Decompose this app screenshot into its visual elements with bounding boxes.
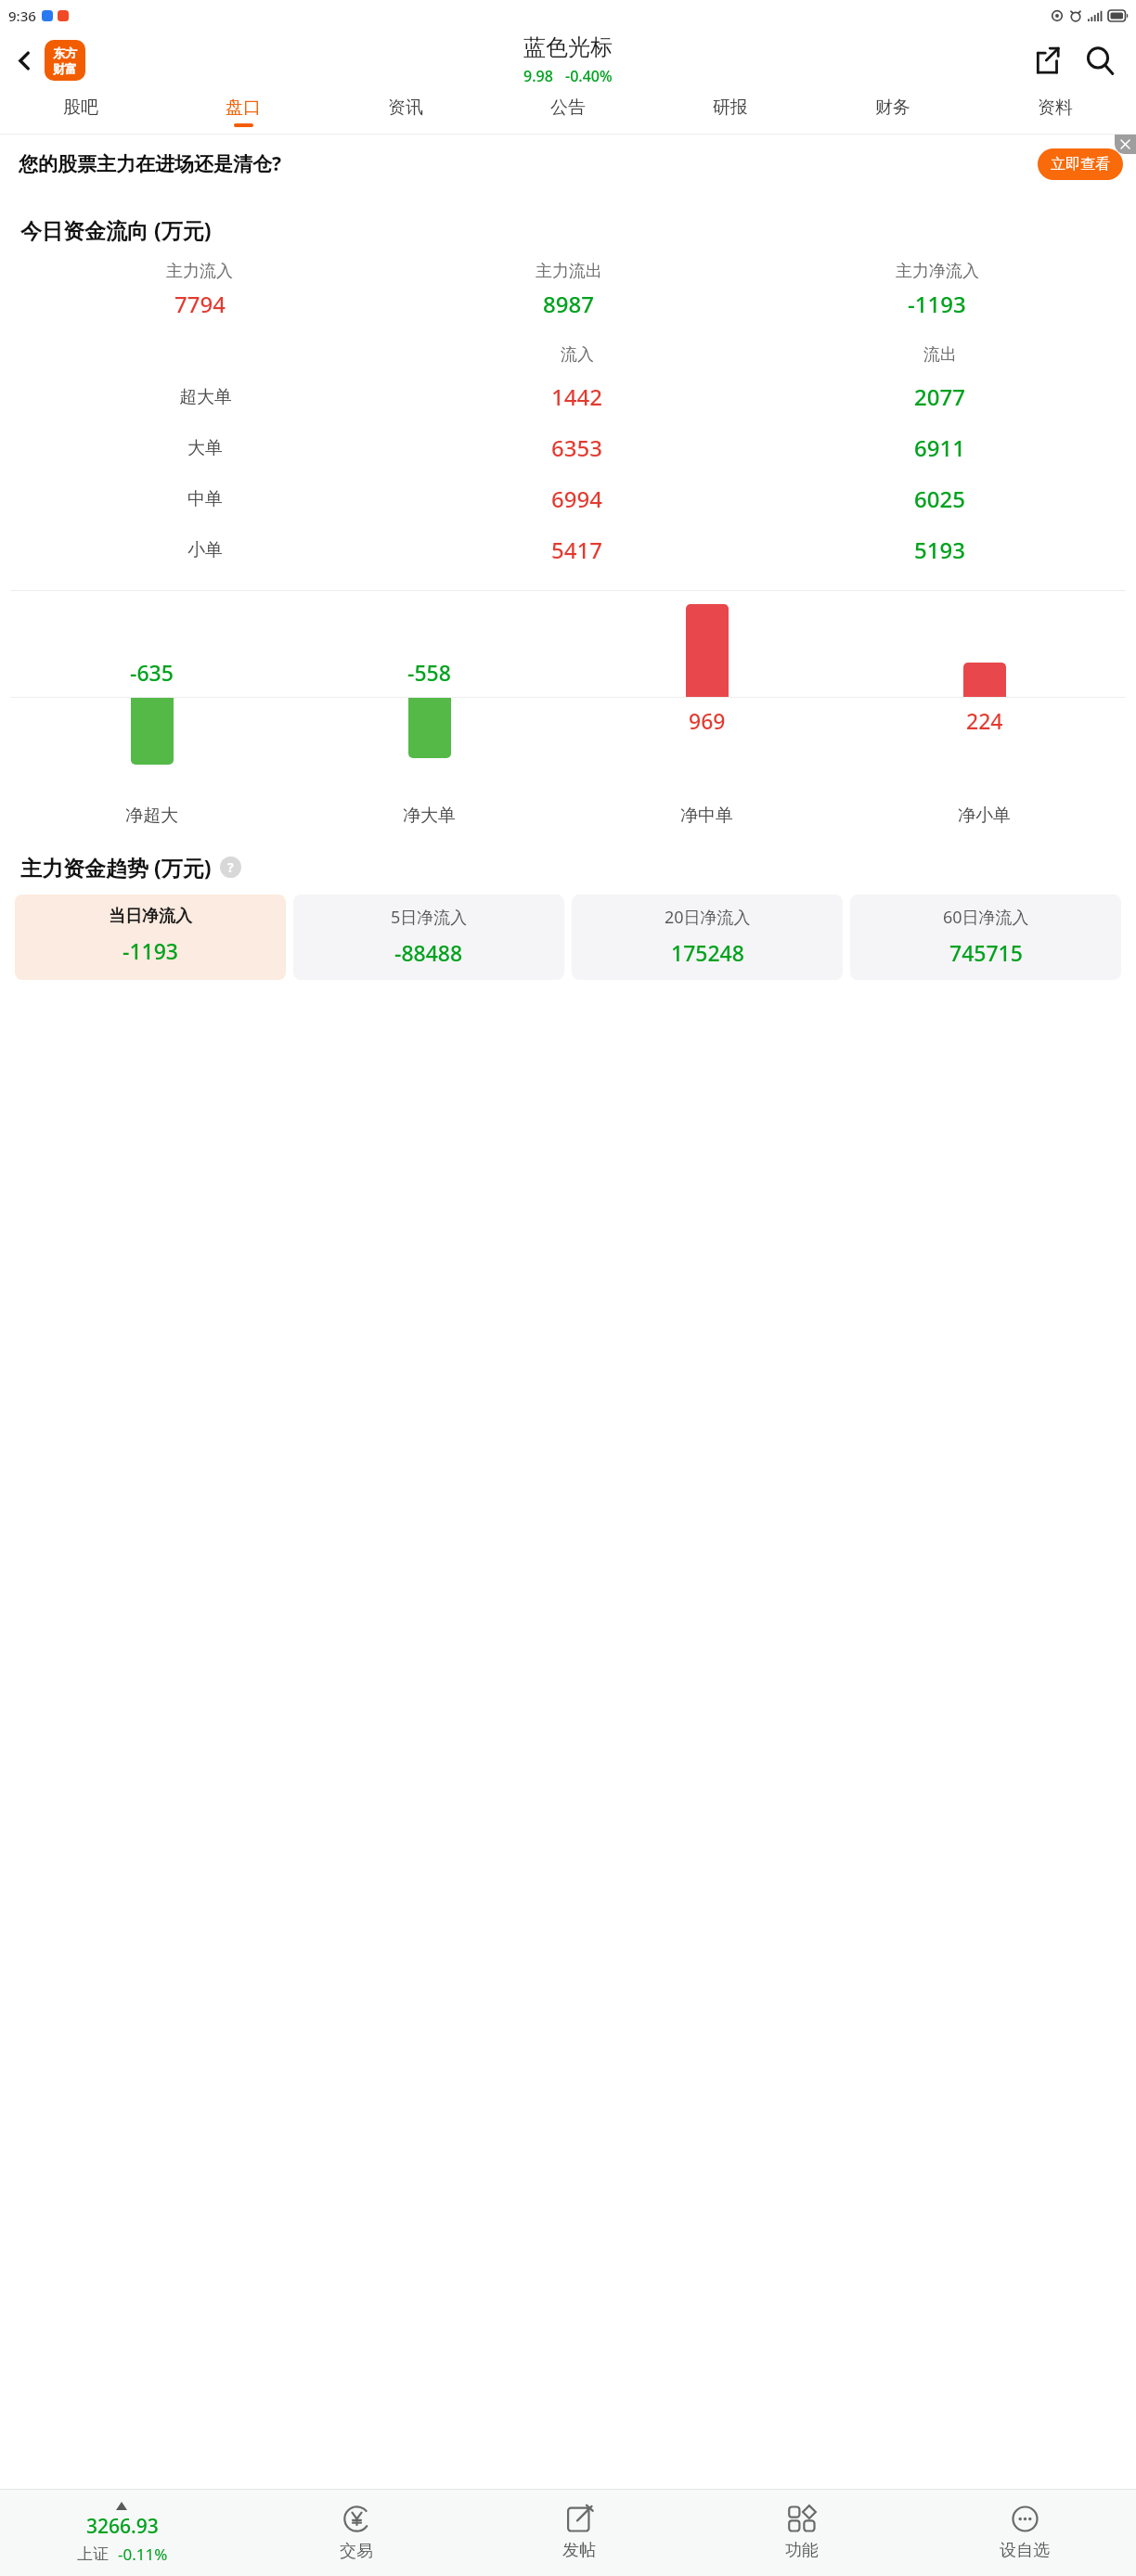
staticText: 流出 <box>923 344 957 366</box>
staticText: 上证 <box>77 2544 109 2564</box>
button[interactable]: 股吧 <box>0 89 161 135</box>
staticText: 财富 <box>53 61 77 76</box>
staticText: 研报 <box>713 97 748 119</box>
staticText: 净小单 <box>958 805 1011 827</box>
button[interactable]: 资料 <box>974 89 1136 135</box>
button[interactable]: 资讯 <box>324 89 486 135</box>
staticText: 224 <box>966 706 1003 735</box>
button[interactable]: 设自选 <box>913 2490 1136 2576</box>
button[interactable]: 研报 <box>649 89 811 135</box>
staticText: 设自选 <box>1000 2540 1050 2561</box>
button[interactable]: 小单 <box>15 524 1121 575</box>
staticText: -88488 <box>394 938 463 967</box>
staticText: 功能 <box>785 2540 819 2561</box>
staticText: 资料 <box>1038 97 1073 119</box>
staticText: -1193 <box>908 289 966 319</box>
button[interactable]: 功能 <box>691 2490 913 2576</box>
staticText: 9.98 <box>523 66 553 86</box>
button[interactable]: Help <box>220 857 241 878</box>
staticText: 中单 <box>187 488 223 510</box>
staticText: 小单 <box>187 539 223 561</box>
button[interactable]: 中单 <box>15 473 1121 524</box>
staticText: 6911 <box>914 432 965 463</box>
staticText: 5日净流入 <box>391 906 468 929</box>
staticText: 5193 <box>914 535 965 565</box>
staticText: 3266.93 <box>86 2513 159 2540</box>
staticText: 净超大 <box>125 805 178 827</box>
staticText: -1193 <box>123 936 179 965</box>
button[interactable]: 东方财富 <box>45 40 85 81</box>
button[interactable]: 财务 <box>811 89 974 135</box>
staticText: 745715 <box>949 938 1023 967</box>
staticText: 9:36 <box>8 6 36 25</box>
button[interactable]: 盘口 <box>161 89 324 135</box>
staticText: 6025 <box>914 483 965 514</box>
staticText: 今日资金流向 (万元) <box>20 215 212 244</box>
staticText: 盘口 <box>226 97 261 119</box>
staticText: 60日净流入 <box>943 906 1029 929</box>
button[interactable]: 公告 <box>486 89 649 135</box>
staticText: ? <box>227 858 234 876</box>
button[interactable]: 立即查看 <box>1038 148 1123 180</box>
staticText: 主力流入 <box>166 261 233 282</box>
staticText: 6994 <box>551 483 602 514</box>
staticText: 立即查看 <box>1051 155 1110 174</box>
button[interactable]: Share <box>1023 35 1073 85</box>
staticText: 969 <box>689 706 726 735</box>
staticText: -635 <box>130 658 174 687</box>
staticText: 主力流出 <box>536 261 602 282</box>
button[interactable]: Close <box>1115 135 1136 154</box>
staticText: 流入 <box>561 344 594 366</box>
button[interactable]: 交易 <box>245 2490 468 2576</box>
staticText: 超大单 <box>179 386 232 408</box>
staticText: 东方 <box>53 45 77 60</box>
staticText: 20日净流入 <box>665 906 751 929</box>
staticText: 公告 <box>550 97 586 119</box>
button[interactable]: Back <box>4 40 45 81</box>
staticText: 蓝色光标 <box>523 33 613 61</box>
staticText: 净中单 <box>680 805 733 827</box>
staticText: 1442 <box>551 381 602 412</box>
button[interactable]: 主力流入 <box>15 259 1121 321</box>
button[interactable]: 3266.93 <box>0 2490 245 2576</box>
button[interactable]: 当日净流入 <box>15 895 286 980</box>
staticText: 175248 <box>671 938 744 967</box>
button[interactable]: 超大单 <box>15 371 1121 422</box>
staticText: 8987 <box>543 289 594 319</box>
staticText: 交易 <box>340 2541 373 2562</box>
staticText: 主力净流入 <box>896 261 979 282</box>
staticText: 大单 <box>187 437 223 459</box>
staticText: 您的股票主力在进场还是清仓? <box>19 150 282 177</box>
staticText: 7794 <box>174 289 226 319</box>
button[interactable]: 20日净流入 <box>572 895 843 980</box>
staticText: 主力资金趋势 (万元) <box>20 853 212 882</box>
staticText: 财务 <box>875 97 910 119</box>
staticText: -0.40% <box>565 66 613 86</box>
staticText: 净大单 <box>403 805 456 827</box>
staticText: 2077 <box>914 381 965 412</box>
button[interactable]: 大单 <box>15 422 1121 473</box>
staticText: 5417 <box>551 535 602 565</box>
staticText: 6353 <box>551 432 602 463</box>
staticText: -558 <box>407 658 451 687</box>
staticText: 当日净流入 <box>109 906 192 927</box>
button[interactable]: 5日净流入 <box>293 895 564 980</box>
staticText: 发帖 <box>562 2540 596 2561</box>
button[interactable]: Search <box>1073 33 1127 87</box>
staticText: 股吧 <box>63 97 98 119</box>
staticText: -0.11% <box>118 2544 168 2565</box>
button[interactable]: 60日净流入 <box>850 895 1121 980</box>
button[interactable]: 发帖 <box>468 2490 691 2576</box>
staticText: 资讯 <box>388 97 423 119</box>
